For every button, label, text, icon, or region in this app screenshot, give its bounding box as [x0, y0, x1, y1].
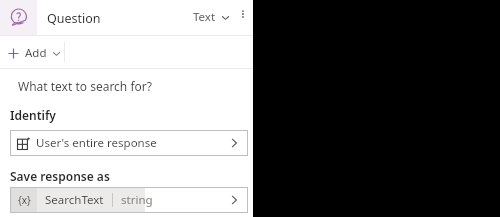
- button[interactable]: Question type: [0, 0, 37, 35]
- staticText: string: [121, 192, 153, 208]
- staticText: SearchText: [45, 192, 104, 208]
- button[interactable]: User's entire response: [10, 130, 248, 156]
- staticText: Text: [193, 9, 216, 25]
- staticText: Save response as: [10, 168, 110, 184]
- button[interactable]: Add: [4, 42, 65, 64]
- button[interactable]: Text: [191, 7, 232, 27]
- staticText: What text to search for?: [18, 78, 152, 94]
- staticText: Identify: [10, 107, 56, 123]
- staticText: {x}: [18, 193, 31, 207]
- staticText: User's entire response: [36, 135, 157, 151]
- staticText: Add: [25, 45, 47, 61]
- button[interactable]: {x}: [10, 187, 248, 213]
- button[interactable]: More options: [234, 5, 252, 23]
- staticText: Question: [47, 10, 101, 27]
